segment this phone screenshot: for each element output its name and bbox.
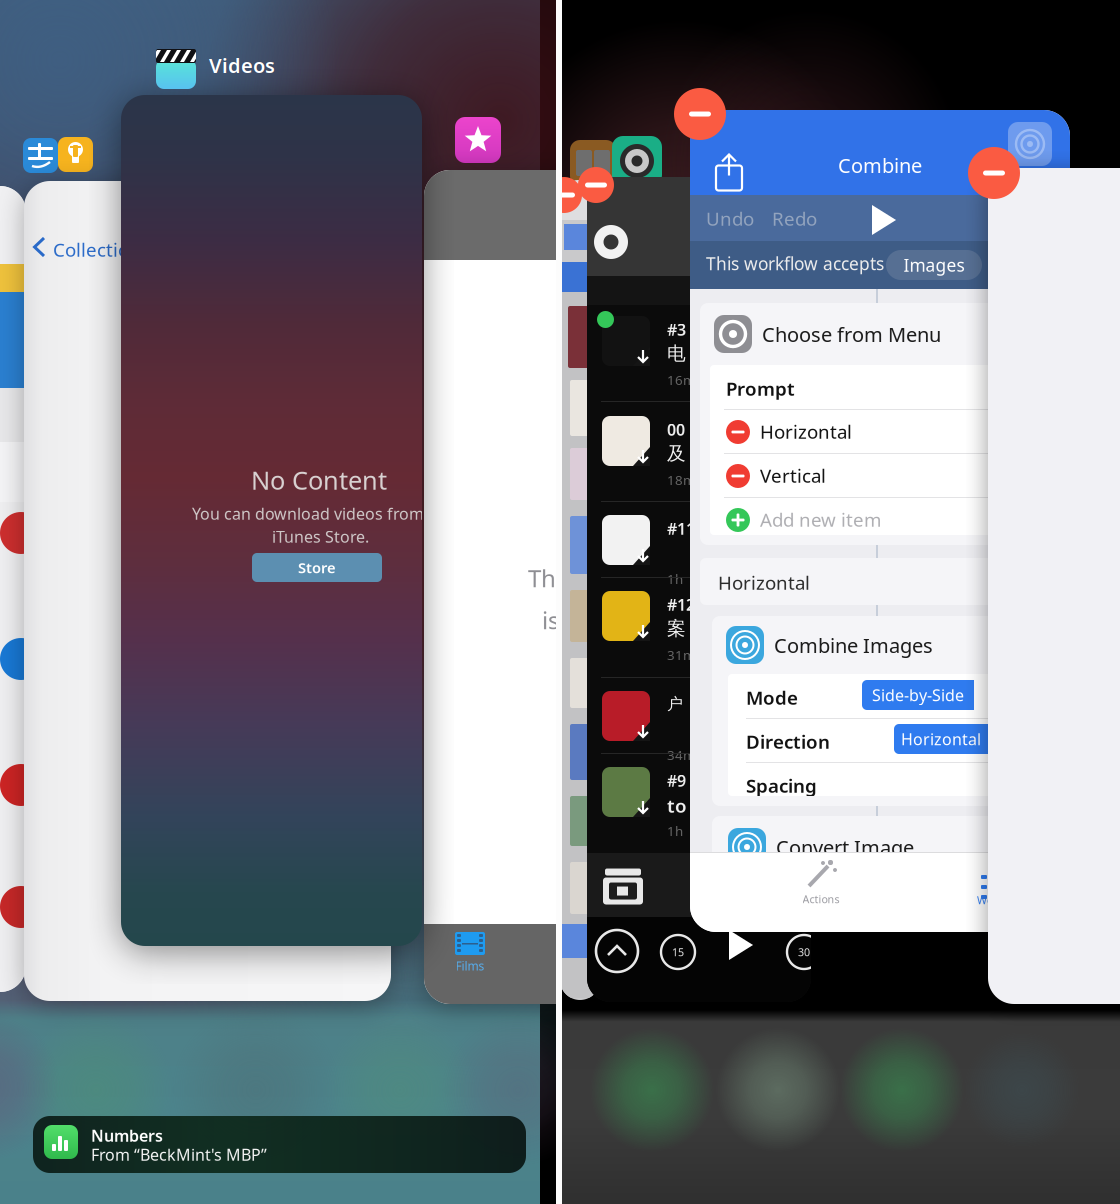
- staticText: 30: [798, 945, 810, 959]
- staticText: 及: [667, 442, 686, 465]
- staticText: iTunes Store.: [272, 526, 369, 547]
- staticText: to: [667, 793, 687, 818]
- staticText: 1h: [667, 822, 683, 840]
- staticText: Prompt: [726, 376, 795, 401]
- button[interactable]: Films: [442, 928, 498, 978]
- staticText: From “BeckMint's MBP”: [91, 1144, 267, 1165]
- staticText: Mode: [746, 685, 798, 710]
- staticText: Films: [455, 958, 484, 974]
- staticText: Combine Images: [774, 632, 933, 659]
- staticText: #3: [667, 319, 686, 340]
- staticText: Spacing: [746, 773, 817, 798]
- staticText: Convert Image: [776, 834, 914, 861]
- staticText: Direction: [746, 729, 830, 754]
- button[interactable]: Close app: [546, 177, 582, 213]
- staticText: 户: [667, 694, 683, 714]
- staticText: Store: [298, 558, 336, 577]
- staticText: Undo: [706, 206, 754, 231]
- staticText: Combine: [838, 152, 922, 179]
- staticText: 1h: [667, 570, 683, 588]
- button[interactable]: Close app: [968, 147, 1020, 199]
- staticText: Horizontal: [901, 728, 981, 750]
- staticText: Add new item: [760, 507, 881, 532]
- staticText: No Content: [251, 463, 387, 497]
- staticText: 案: [667, 617, 686, 640]
- staticText: Vertical: [760, 463, 826, 488]
- staticText: Images: [903, 253, 964, 276]
- staticText: 18m: [667, 471, 695, 489]
- staticText: Horizontal: [718, 570, 810, 595]
- staticText: 15: [672, 945, 684, 959]
- staticText: 34m: [667, 746, 695, 764]
- staticText: Redo: [772, 206, 817, 231]
- staticText: #11: [667, 518, 695, 539]
- button[interactable]: Store: [252, 553, 382, 582]
- staticText: Actions: [802, 892, 839, 906]
- staticText: 31m: [667, 646, 695, 664]
- staticText: 00: [667, 419, 685, 440]
- button[interactable]: Close app: [578, 167, 614, 203]
- button[interactable]: Collection: [30, 233, 230, 263]
- staticText: Videos: [209, 52, 275, 79]
- staticText: is: [542, 604, 559, 636]
- staticText: Horizontal: [760, 419, 852, 444]
- button[interactable]: Actions: [766, 860, 876, 916]
- staticText: You can download videos from t: [192, 503, 434, 524]
- staticText: Numbers: [91, 1125, 163, 1146]
- staticText: 电: [667, 342, 686, 365]
- staticText: #9: [667, 770, 686, 791]
- staticText: 16m: [667, 371, 695, 389]
- button[interactable]: Numbers: [33, 1116, 526, 1173]
- staticText: Collection: [53, 237, 141, 262]
- button[interactable]: Workfl: [938, 860, 1048, 916]
- staticText: This workflow accepts: [706, 252, 884, 275]
- staticText: #12: [667, 594, 695, 615]
- staticText: Side-by-Side: [872, 684, 964, 706]
- staticText: The: [528, 562, 570, 594]
- button[interactable]: Close app: [674, 88, 726, 140]
- staticText: Workfl: [977, 893, 1009, 907]
- staticText: S: [582, 956, 589, 972]
- staticText: Choose from Menu: [762, 321, 941, 348]
